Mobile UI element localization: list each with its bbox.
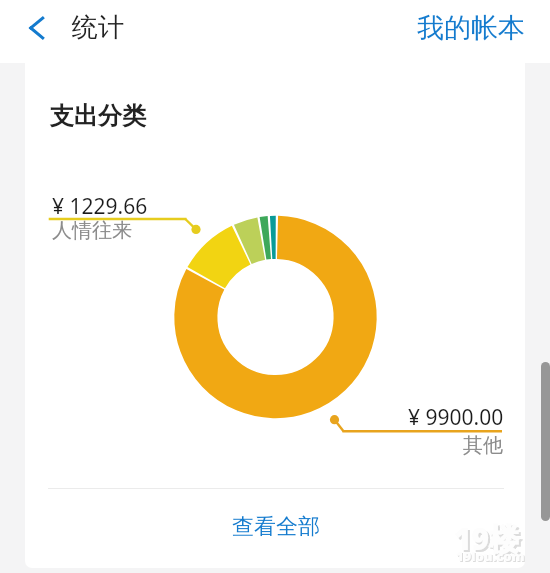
staticText: 人情往来 <box>52 218 132 243</box>
button[interactable]: 我的帐本 <box>400 0 541 55</box>
staticText: 19楼 <box>456 520 522 561</box>
button[interactable]: Back <box>12 3 62 53</box>
staticText: 查看全部 <box>232 513 320 541</box>
staticText: 支出分类 <box>50 101 146 131</box>
staticText: ¥ 1229.66 <box>52 192 148 221</box>
staticText: 其他 <box>463 433 503 458</box>
staticText: 统计 <box>72 11 124 44</box>
staticText: 19楼 <box>454 518 520 559</box>
button[interactable]: 查看全部 <box>25 489 525 564</box>
staticText: ¥ 9900.00 <box>408 403 504 432</box>
staticText: 19lou.com <box>456 547 525 565</box>
staticText: 我的帐本 <box>417 11 525 45</box>
staticText: 19lou.com <box>457 548 526 566</box>
